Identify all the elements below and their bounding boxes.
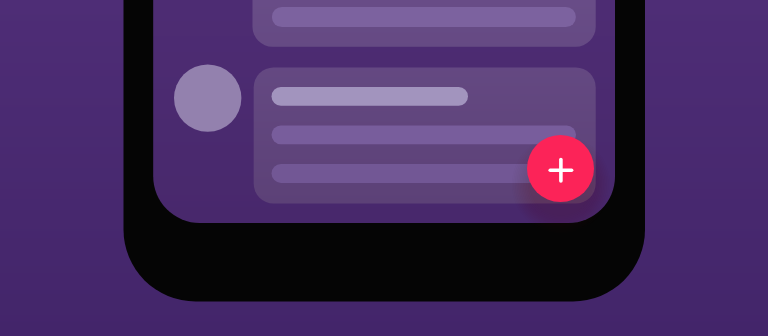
button[interactable]: Add <box>527 135 594 202</box>
